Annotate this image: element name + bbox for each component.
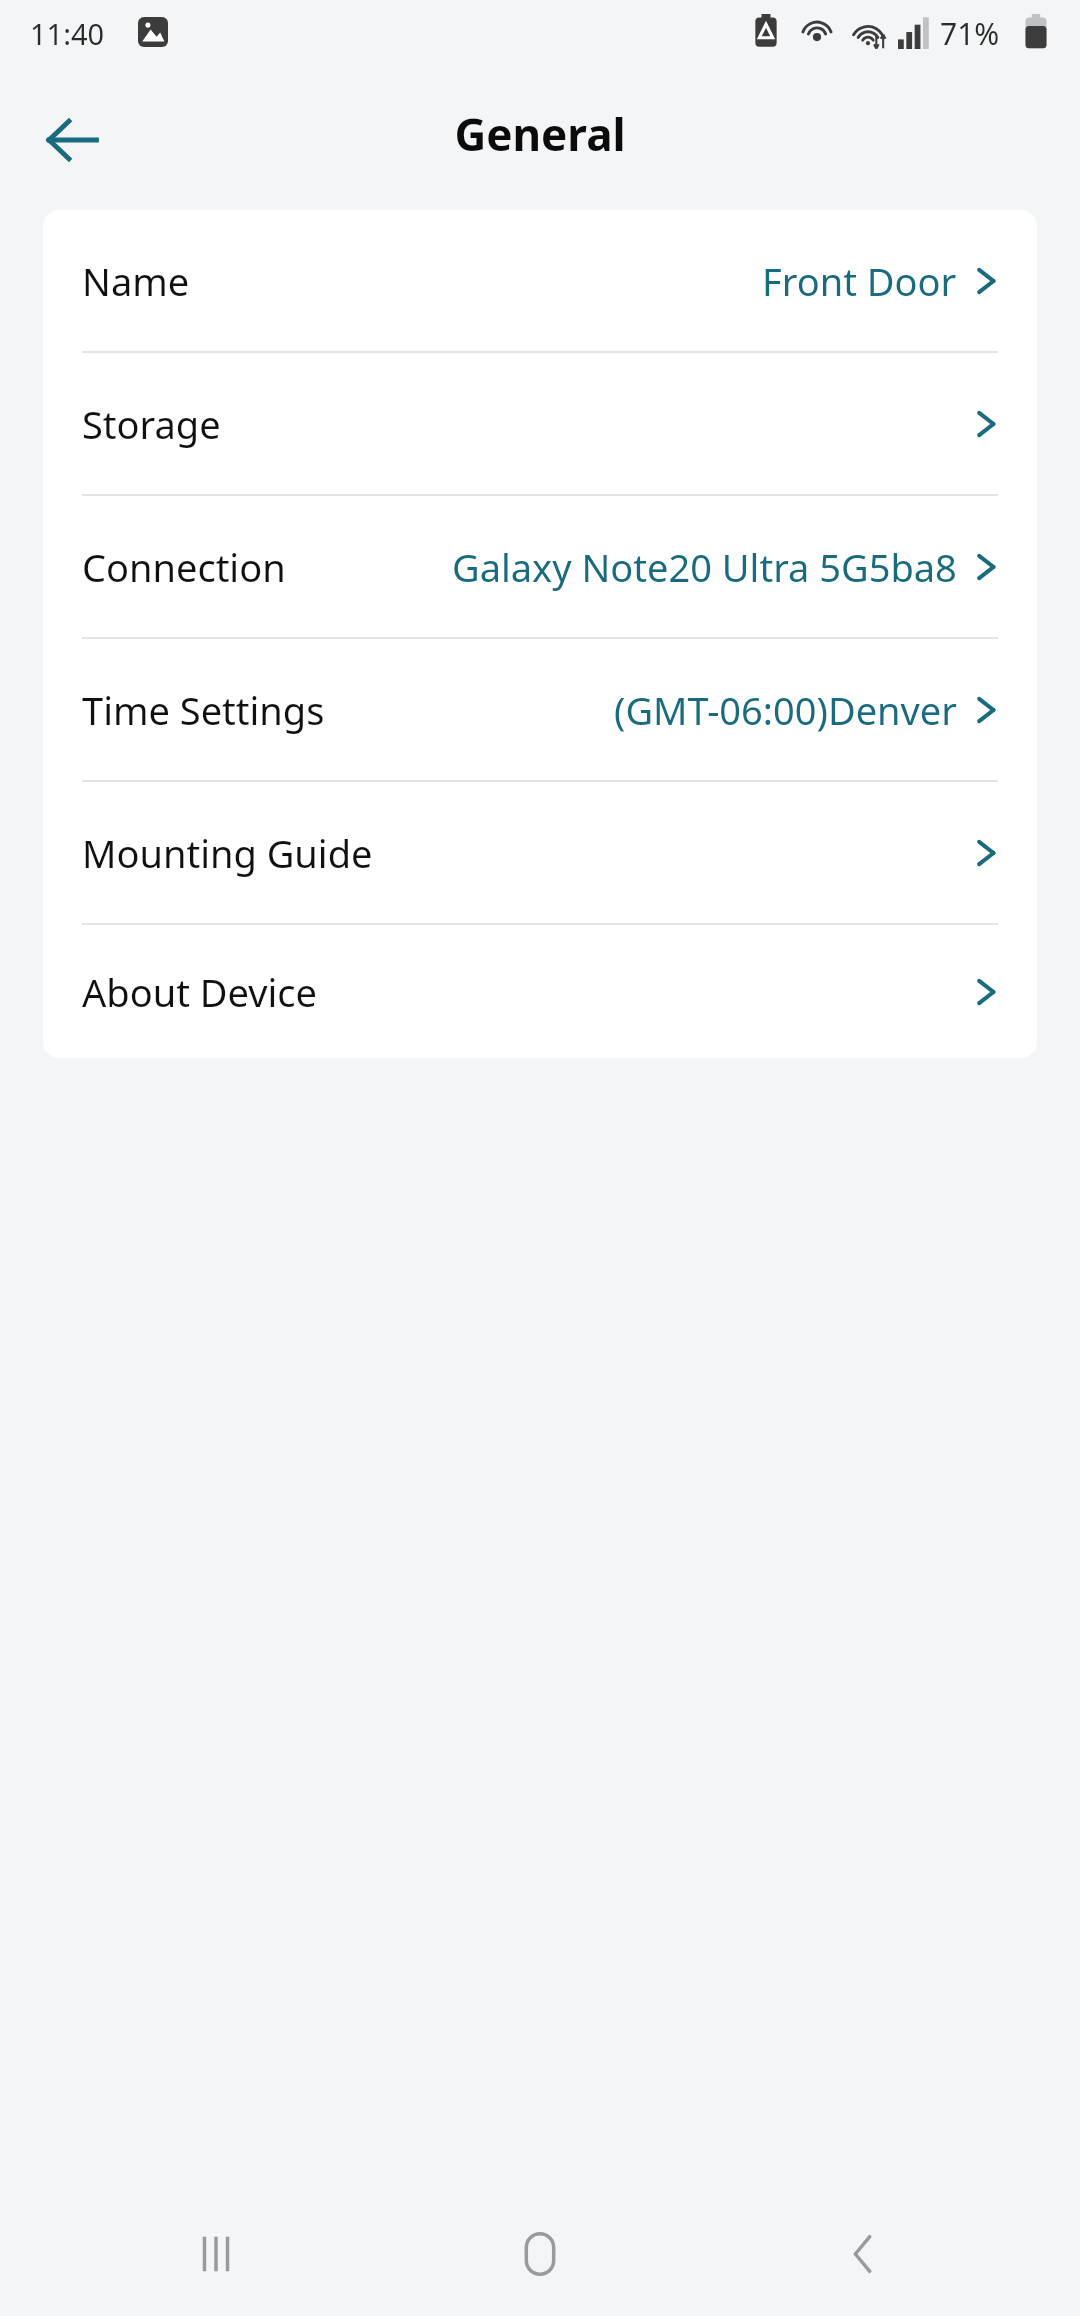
staticText: (GMT-06:00)Denver	[614, 684, 957, 736]
staticText: Connection	[82, 541, 286, 593]
staticText: About Device	[82, 966, 317, 1018]
button[interactable]: Mounting Guide	[43, 782, 1037, 923]
button[interactable]: Time Settings	[43, 639, 1037, 780]
button[interactable]: Home	[504, 2218, 576, 2290]
staticText: 71%	[940, 13, 1000, 54]
staticText: Galaxy Note20 Ultra 5G5ba8	[452, 541, 957, 593]
button[interactable]: Name	[43, 210, 1037, 351]
staticText: 11:40	[30, 14, 105, 53]
staticText: General	[0, 104, 1080, 164]
button[interactable]: Recents	[180, 2218, 252, 2290]
staticText: Mounting Guide	[82, 827, 373, 879]
button[interactable]: Back	[828, 2218, 900, 2290]
button[interactable]: Connection	[43, 496, 1037, 637]
staticText: Time Settings	[82, 684, 325, 736]
staticText: Name	[82, 255, 190, 307]
button[interactable]: About Device	[43, 925, 1037, 1058]
staticText: Storage	[82, 398, 221, 450]
staticText: Front Door	[762, 255, 957, 307]
button[interactable]: Back	[28, 96, 116, 184]
button[interactable]: Storage	[43, 353, 1037, 494]
